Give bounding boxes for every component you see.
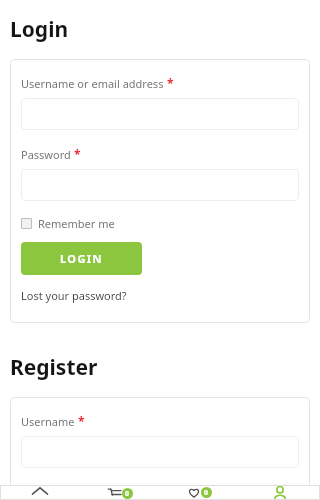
- button[interactable]: [21, 436, 299, 468]
- button[interactable]: Wishlist, 0 items: [160, 485, 240, 500]
- button[interactable]: Remember me: [21, 216, 115, 231]
- staticText: Remember me: [38, 216, 115, 231]
- staticText: LOGIN: [60, 251, 103, 266]
- staticText: *: [74, 146, 81, 162]
- staticText: Username: [21, 414, 75, 429]
- staticText: Login: [10, 15, 69, 44]
- button[interactable]: Lost your password?: [21, 288, 127, 303]
- button[interactable]: Account: [240, 485, 320, 500]
- button[interactable]: [21, 169, 299, 201]
- staticText: Password: [21, 147, 71, 162]
- button[interactable]: Home: [0, 485, 80, 500]
- staticText: 0: [204, 488, 209, 498]
- staticText: 0: [125, 489, 130, 499]
- staticText: Username or email address: [21, 76, 164, 91]
- staticText: Register: [10, 353, 98, 382]
- button[interactable]: Cart, 0 items: [80, 485, 160, 500]
- button[interactable]: [21, 98, 299, 130]
- staticText: *: [78, 413, 85, 429]
- staticText: *: [167, 75, 174, 91]
- button[interactable]: LOGIN: [21, 242, 142, 275]
